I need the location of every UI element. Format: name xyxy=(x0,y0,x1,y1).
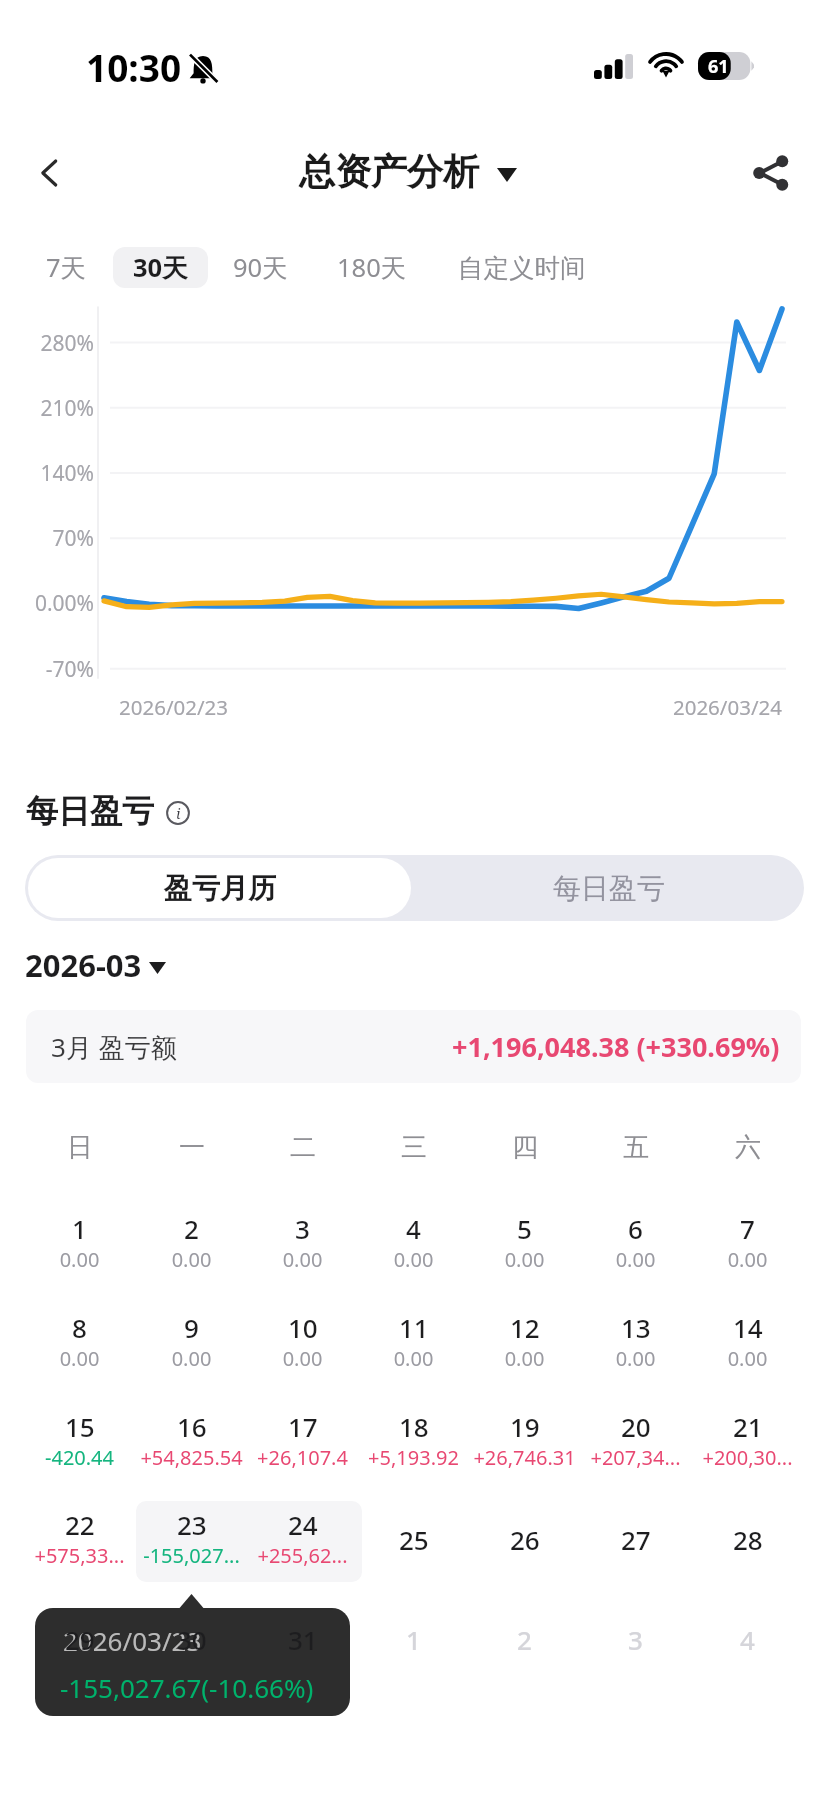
staticText: 1 xyxy=(72,1211,87,1246)
button[interactable]: 31 xyxy=(247,1622,358,1657)
button[interactable]: 每日盈亏 xyxy=(414,855,804,921)
button[interactable] xyxy=(247,1303,358,1384)
button[interactable]: 盈亏月历 xyxy=(28,858,411,918)
button[interactable]: 总资产分析 xyxy=(299,149,517,194)
staticText: 0.00 xyxy=(24,1246,135,1273)
staticText: 9 xyxy=(184,1310,199,1345)
staticText: +26,107.4 xyxy=(247,1444,358,1471)
staticText: 四 xyxy=(512,1131,538,1164)
staticText: 19 xyxy=(510,1409,540,1444)
button[interactable]: 7天 xyxy=(32,247,101,288)
staticText: 29 xyxy=(65,1622,95,1657)
button[interactable]: 180天 xyxy=(323,247,421,288)
staticText: 7天 xyxy=(46,250,87,285)
button[interactable] xyxy=(580,1600,691,1681)
button[interactable] xyxy=(580,1303,691,1384)
button[interactable] xyxy=(358,1402,469,1483)
button[interactable]: 29 xyxy=(24,1622,135,1657)
button[interactable] xyxy=(136,1600,247,1681)
button[interactable]: Info xyxy=(166,801,190,825)
button[interactable] xyxy=(247,1501,358,1582)
button[interactable]: 2026-03 xyxy=(25,944,166,986)
staticText: 18 xyxy=(399,1409,429,1444)
staticText: 90天 xyxy=(233,250,288,285)
staticText: 2 xyxy=(517,1622,532,1657)
staticText: 24 xyxy=(288,1507,318,1542)
staticText: 3月 盈亏额 xyxy=(51,1029,177,1065)
staticText: 0.00% xyxy=(0,589,94,618)
button[interactable] xyxy=(24,1501,135,1582)
staticText: -70% xyxy=(0,655,94,684)
button[interactable] xyxy=(580,1204,691,1285)
staticText: 30 xyxy=(177,1622,207,1657)
button[interactable] xyxy=(358,1501,469,1582)
button[interactable] xyxy=(692,1402,803,1483)
staticText: 140% xyxy=(0,459,94,488)
staticText: 二 xyxy=(290,1131,316,1164)
staticText: 4 xyxy=(740,1622,755,1657)
button[interactable] xyxy=(358,1303,469,1384)
staticText: 16 xyxy=(177,1409,207,1444)
staticText: 0.00 xyxy=(247,1345,358,1372)
staticText: 总资产分析 xyxy=(299,149,479,194)
staticText: 日 xyxy=(67,1131,93,1164)
staticText: +255,62... xyxy=(247,1542,358,1569)
staticText: 每日盈亏 xyxy=(26,791,154,831)
staticText: 每日盈亏 xyxy=(553,871,665,906)
button[interactable] xyxy=(580,1402,691,1483)
staticText: 14 xyxy=(733,1310,763,1345)
staticText: 0.00 xyxy=(136,1246,247,1273)
button[interactable]: Back xyxy=(26,149,74,197)
button[interactable] xyxy=(247,1600,358,1681)
staticText: 22 xyxy=(65,1507,95,1542)
staticText: 2026/02/23 xyxy=(119,693,229,721)
staticText: 三 xyxy=(401,1131,427,1164)
button[interactable]: 30天 xyxy=(113,247,208,288)
staticText: 31 xyxy=(288,1622,318,1657)
button[interactable] xyxy=(692,1600,803,1681)
button[interactable] xyxy=(136,1303,247,1384)
button[interactable] xyxy=(136,1501,247,1582)
staticText: +1,196,048.38 (+330.69%) xyxy=(452,1028,780,1065)
staticText: 13 xyxy=(621,1310,651,1345)
button[interactable] xyxy=(358,1600,469,1681)
staticText: 2 xyxy=(184,1211,199,1246)
staticText: 一 xyxy=(179,1131,205,1164)
button[interactable] xyxy=(24,1303,135,1384)
button[interactable] xyxy=(136,1402,247,1483)
button[interactable]: 90天 xyxy=(219,247,302,288)
staticText: 6 xyxy=(628,1211,643,1246)
button[interactable] xyxy=(469,1303,580,1384)
staticText: 3 xyxy=(628,1622,643,1657)
button[interactable] xyxy=(580,1501,691,1582)
button[interactable]: 30 xyxy=(136,1622,247,1657)
button[interactable] xyxy=(136,1204,247,1285)
button[interactable] xyxy=(692,1204,803,1285)
staticText: 2026/03/23 xyxy=(63,1623,202,1658)
button[interactable] xyxy=(358,1204,469,1285)
button[interactable] xyxy=(469,1501,580,1582)
staticText: 210% xyxy=(0,394,94,423)
staticText: 0.00 xyxy=(692,1345,803,1372)
staticText: 26 xyxy=(510,1522,540,1557)
button[interactable] xyxy=(692,1303,803,1384)
button[interactable] xyxy=(24,1204,135,1285)
staticText: 20 xyxy=(621,1409,651,1444)
staticText: 25 xyxy=(399,1522,429,1557)
staticText: +200,30... xyxy=(692,1444,803,1471)
button[interactable]: Share xyxy=(746,149,794,197)
button[interactable] xyxy=(247,1402,358,1483)
staticText: 六 xyxy=(735,1131,761,1164)
button[interactable] xyxy=(24,1600,135,1681)
button[interactable] xyxy=(692,1501,803,1582)
button[interactable] xyxy=(469,1600,580,1681)
button[interactable] xyxy=(247,1204,358,1285)
button[interactable] xyxy=(24,1402,135,1483)
staticText: 0.00 xyxy=(136,1345,247,1372)
button[interactable]: 自定义时间 xyxy=(444,247,600,288)
button[interactable] xyxy=(469,1204,580,1285)
staticText: 180天 xyxy=(337,250,407,285)
button[interactable] xyxy=(469,1402,580,1483)
staticText: 7 xyxy=(740,1211,755,1246)
staticText: 27 xyxy=(621,1522,651,1557)
